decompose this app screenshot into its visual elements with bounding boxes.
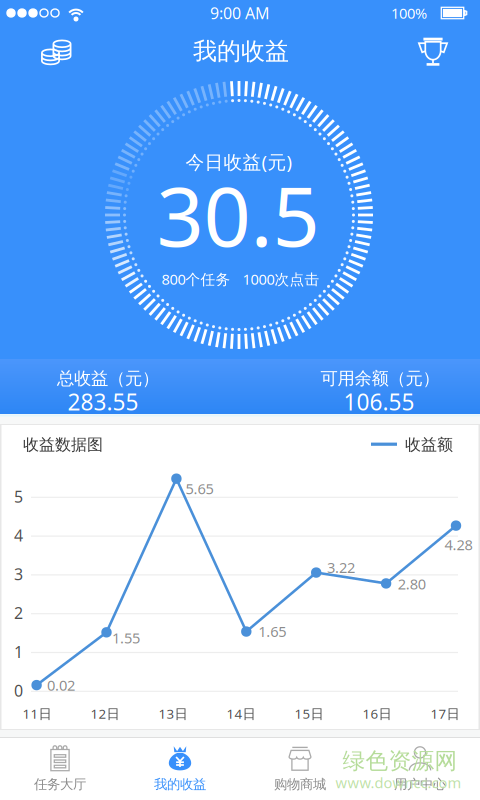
- staticText: 我的收益: [193, 36, 289, 66]
- staticText: 0.02: [47, 675, 75, 695]
- staticText: 15日: [294, 705, 323, 722]
- staticText: 3: [14, 563, 23, 585]
- staticText: 283.55: [67, 387, 138, 417]
- staticText: 2.80: [398, 574, 426, 593]
- staticText: 16日: [362, 705, 391, 722]
- button[interactable]: 任务大厅: [0, 738, 120, 800]
- staticText: 用户中心: [394, 776, 446, 792]
- staticText: 我的收益: [154, 776, 206, 792]
- button[interactable]: 购物商城: [240, 738, 360, 800]
- staticText: 绿色资源网: [342, 747, 457, 775]
- staticText: 1: [14, 641, 23, 662]
- staticText: 12日: [90, 705, 119, 722]
- staticText: 1.55: [112, 628, 140, 648]
- button[interactable]: 我的收益: [120, 738, 240, 800]
- staticText: 100%: [391, 3, 427, 23]
- staticText: 收益数据图: [23, 435, 103, 454]
- staticText: 11日: [22, 705, 51, 722]
- staticText: 总收益（元）: [57, 368, 159, 389]
- button[interactable]: 收益记录: [24, 29, 88, 75]
- staticText: 收益额: [405, 435, 453, 454]
- staticText: 可用余额（元）: [320, 368, 439, 389]
- button[interactable]: 用户中心: [360, 738, 480, 800]
- staticText: 30.5: [156, 160, 319, 269]
- staticText: 购物商城: [274, 776, 326, 792]
- staticText: 4.28: [444, 535, 472, 554]
- staticText: 106.55: [343, 387, 414, 417]
- staticText: 0: [14, 680, 23, 701]
- button[interactable]: 排行榜: [402, 28, 464, 75]
- staticText: 3.22: [327, 558, 355, 577]
- staticText: 5.65: [185, 479, 213, 498]
- staticText: 任务大厅: [34, 776, 86, 792]
- staticText: www.downcc.com: [335, 773, 461, 792]
- staticText: 13日: [158, 705, 187, 722]
- staticText: 800个任务 1000次点击: [161, 269, 319, 289]
- staticText: 17日: [430, 705, 459, 722]
- staticText: 9:00 AM: [210, 2, 270, 24]
- staticText: 5: [14, 486, 23, 507]
- staticText: 4: [14, 525, 23, 546]
- staticText: 今日收益(元): [185, 149, 292, 174]
- staticText: 1.65: [258, 621, 286, 641]
- staticText: 14日: [226, 705, 255, 722]
- staticText: 2: [14, 602, 23, 623]
